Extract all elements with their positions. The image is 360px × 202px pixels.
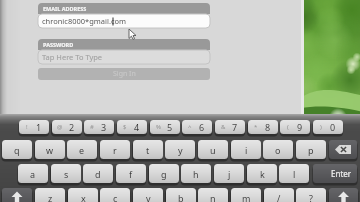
staticText: ( bbox=[287, 123, 289, 131]
staticText: 7 bbox=[232, 121, 238, 133]
button[interactable]: Enter bbox=[313, 164, 357, 183]
button[interactable]: ) bbox=[313, 120, 343, 134]
staticText: / bbox=[277, 192, 281, 202]
button[interactable]: s bbox=[51, 164, 81, 183]
staticText: g bbox=[161, 168, 167, 180]
button[interactable]: q bbox=[2, 140, 32, 159]
button[interactable]: c bbox=[100, 188, 130, 202]
staticText: ) bbox=[320, 123, 322, 131]
staticText: f bbox=[129, 168, 133, 180]
staticText: i bbox=[245, 144, 248, 156]
staticText: u bbox=[210, 144, 216, 156]
button[interactable]: y bbox=[165, 140, 195, 159]
staticText: p bbox=[308, 144, 314, 156]
staticText: Sign In bbox=[113, 69, 136, 79]
staticText: d bbox=[95, 168, 101, 180]
button[interactable]: t bbox=[133, 140, 163, 159]
button[interactable]: % bbox=[150, 120, 180, 134]
button[interactable]: & bbox=[215, 120, 245, 134]
button[interactable]: $ bbox=[117, 120, 147, 134]
staticText: 0 bbox=[330, 121, 336, 133]
staticText: 5 bbox=[167, 121, 173, 133]
staticText: chronic8000*gmail.com bbox=[42, 16, 127, 26]
staticText: h bbox=[193, 168, 199, 180]
staticText: 8 bbox=[265, 121, 271, 133]
button[interactable]: b bbox=[166, 188, 196, 202]
staticText: k bbox=[260, 168, 265, 180]
staticText: ^ bbox=[188, 123, 192, 131]
staticText: PASSWORD bbox=[43, 41, 74, 48]
button[interactable]: v bbox=[133, 188, 163, 202]
staticText: w bbox=[46, 144, 54, 156]
staticText: q bbox=[14, 144, 20, 156]
button[interactable]: ^ bbox=[182, 120, 212, 134]
button[interactable]: j bbox=[214, 164, 244, 183]
staticText: t bbox=[146, 144, 150, 156]
button[interactable]: g bbox=[149, 164, 179, 183]
button[interactable]: ! bbox=[19, 120, 49, 134]
staticText: @ bbox=[57, 123, 63, 131]
button[interactable]: h bbox=[181, 164, 211, 183]
staticText: a bbox=[30, 168, 36, 180]
staticText: * bbox=[254, 123, 258, 131]
staticText: 6 bbox=[199, 121, 205, 133]
button[interactable]: x bbox=[68, 188, 98, 202]
staticText: y bbox=[178, 144, 183, 156]
staticText: x bbox=[81, 192, 86, 202]
button[interactable]: w bbox=[35, 140, 65, 159]
staticText: n bbox=[210, 192, 216, 202]
staticText: $ bbox=[123, 123, 127, 131]
button[interactable]: n bbox=[198, 188, 228, 202]
staticText: s bbox=[64, 168, 69, 180]
staticText: 3 bbox=[101, 121, 107, 133]
staticText: Tap Here To Type bbox=[42, 52, 103, 62]
staticText: # bbox=[90, 123, 94, 131]
button[interactable]: Backspace bbox=[329, 140, 357, 159]
staticText: ! bbox=[26, 123, 28, 131]
button[interactable]: Shift bbox=[2, 188, 32, 202]
button[interactable]: a bbox=[18, 164, 48, 183]
button[interactable]: p bbox=[296, 140, 326, 159]
button[interactable]: e bbox=[67, 140, 97, 159]
button[interactable]: k bbox=[247, 164, 277, 183]
button[interactable]: Tap Here To Type bbox=[38, 50, 210, 64]
staticText: l bbox=[293, 168, 296, 180]
staticText: 9 bbox=[297, 121, 303, 133]
button[interactable]: ( bbox=[280, 120, 310, 134]
button[interactable]: u bbox=[198, 140, 228, 159]
staticText: EMAIL ADDRESS bbox=[43, 5, 87, 12]
staticText: v bbox=[146, 192, 151, 202]
staticText: z bbox=[48, 192, 53, 202]
button[interactable]: / bbox=[264, 188, 294, 202]
button[interactable]: d bbox=[83, 164, 113, 183]
button[interactable]: chronic8000*gmail.com bbox=[38, 14, 210, 28]
button[interactable]: @ bbox=[52, 120, 82, 134]
button[interactable]: f bbox=[116, 164, 146, 183]
button[interactable]: ? bbox=[296, 188, 326, 202]
staticText: o bbox=[275, 144, 281, 156]
staticText: & bbox=[221, 123, 226, 131]
staticText: 1 bbox=[36, 121, 42, 133]
button[interactable]: i bbox=[231, 140, 261, 159]
button[interactable]: l bbox=[279, 164, 309, 183]
button[interactable]: * bbox=[248, 120, 278, 134]
staticText: r bbox=[113, 144, 117, 156]
button[interactable]: z bbox=[35, 188, 65, 202]
staticText: % bbox=[156, 123, 161, 131]
button[interactable]: r bbox=[100, 140, 130, 159]
staticText: 2 bbox=[69, 121, 75, 133]
staticText: b bbox=[178, 192, 184, 202]
staticText: Enter bbox=[331, 168, 352, 179]
button[interactable]: m bbox=[231, 188, 261, 202]
staticText: ? bbox=[309, 192, 313, 202]
staticText: m bbox=[242, 192, 251, 202]
staticText: 4 bbox=[134, 121, 140, 133]
button[interactable]: # bbox=[84, 120, 114, 134]
staticText: e bbox=[79, 144, 85, 156]
staticText: c bbox=[113, 192, 118, 202]
button[interactable]: o bbox=[263, 140, 293, 159]
button[interactable]: Shift bbox=[329, 188, 358, 202]
staticText: j bbox=[228, 168, 231, 180]
